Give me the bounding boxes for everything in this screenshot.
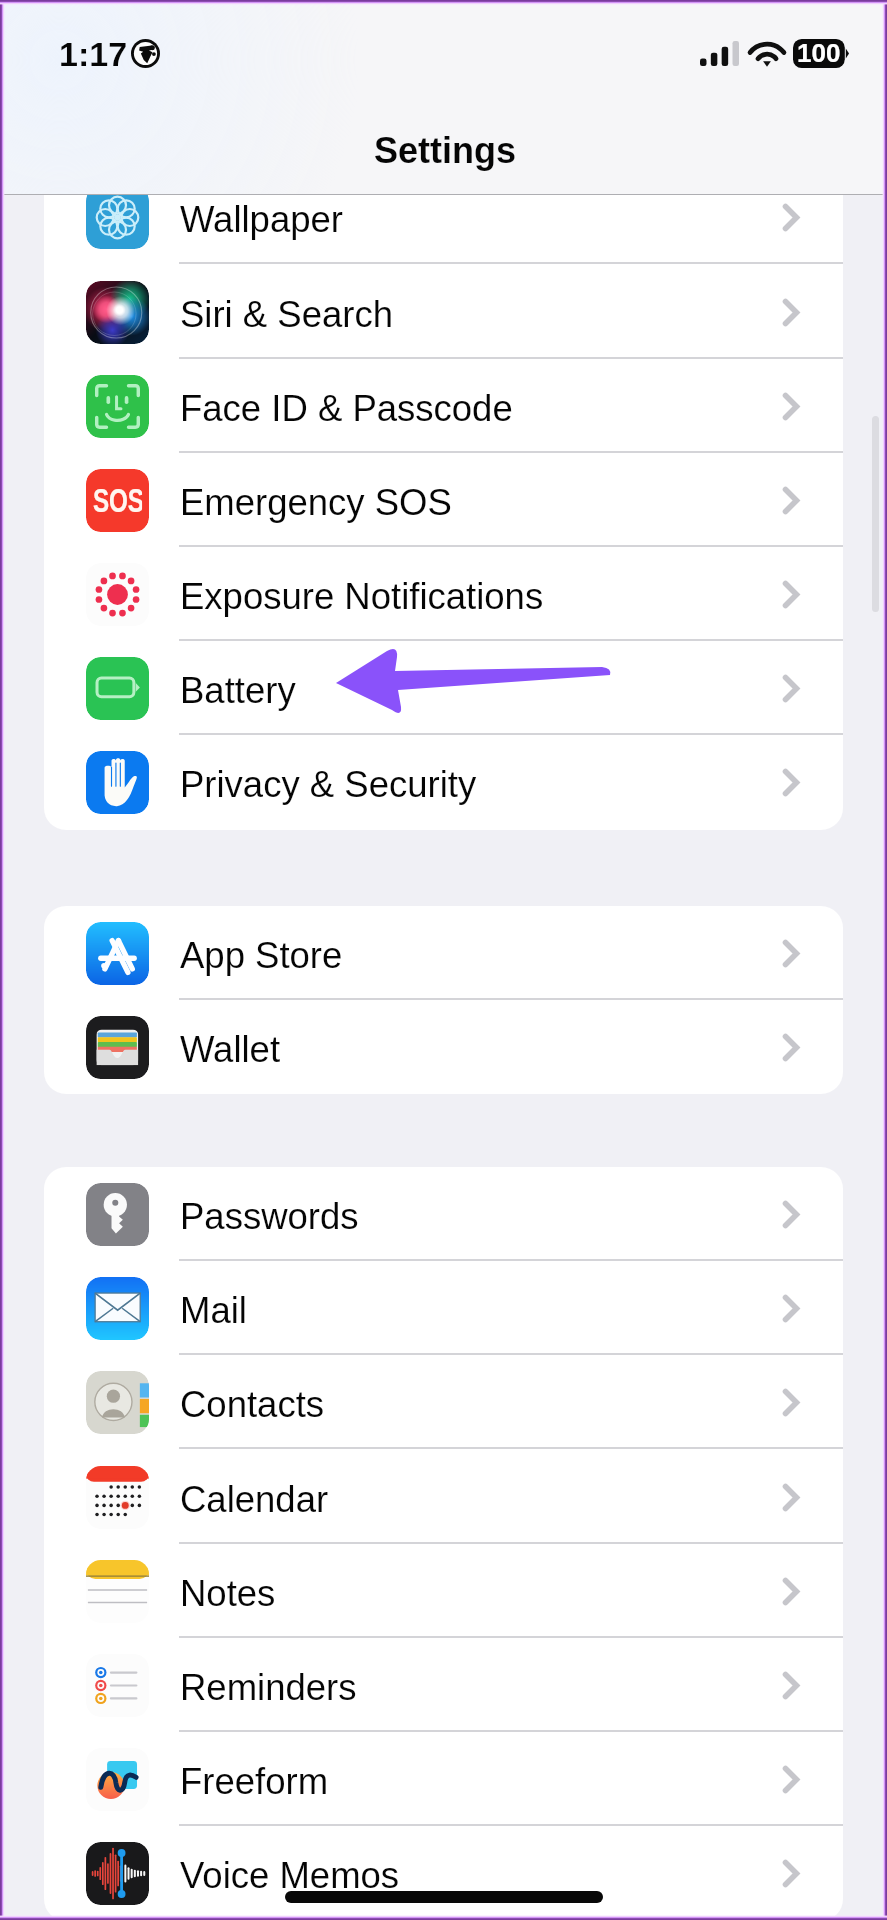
button[interactable]: Mail: [44, 1261, 843, 1355]
staticText: Freeform: [180, 1761, 329, 1802]
button[interactable]: Voice Memos: [44, 1826, 843, 1920]
staticText: Face ID & Passcode: [180, 388, 513, 429]
staticText: Mail: [180, 1290, 247, 1331]
staticText: Contacts: [180, 1384, 325, 1425]
button[interactable]: Wallet: [44, 1000, 843, 1094]
button[interactable]: Reminders: [44, 1638, 843, 1732]
button[interactable]: Privacy & Security: [44, 735, 843, 829]
staticText: 1:17: [59, 35, 128, 73]
staticText: Wallpaper: [180, 199, 343, 240]
staticText: Settings: [374, 130, 517, 170]
staticText: SOS: [93, 482, 142, 519]
button[interactable]: Exposure Notifications: [44, 547, 843, 641]
button[interactable]: Notes: [44, 1544, 843, 1638]
staticText: Battery: [180, 670, 296, 711]
staticText: Voice Memos: [180, 1855, 400, 1896]
staticText: Exposure Notifications: [180, 576, 544, 617]
button[interactable]: Face ID & Passcode: [44, 359, 843, 453]
button[interactable]: Freeform: [44, 1732, 843, 1826]
staticText: Notes: [180, 1573, 276, 1614]
button[interactable]: SOS: [44, 453, 843, 547]
button[interactable]: Siri & Search: [44, 265, 843, 359]
button[interactable]: Calendar: [44, 1450, 843, 1544]
button[interactable]: App Store: [44, 906, 843, 1000]
staticText: Wallet: [180, 1029, 281, 1070]
button[interactable]: Contacts: [44, 1355, 843, 1449]
staticText: Reminders: [180, 1667, 357, 1708]
staticText: Privacy & Security: [180, 764, 477, 805]
button[interactable]: Passwords: [44, 1167, 843, 1261]
staticText: Emergency SOS: [180, 482, 452, 523]
staticText: Passwords: [180, 1196, 359, 1237]
staticText: App Store: [180, 935, 343, 976]
button[interactable]: Battery: [44, 641, 843, 735]
button[interactable]: Wallpaper: [44, 195, 843, 264]
staticText: Siri & Search: [180, 294, 393, 335]
staticText: 100: [797, 38, 841, 67]
staticText: Calendar: [180, 1479, 329, 1520]
